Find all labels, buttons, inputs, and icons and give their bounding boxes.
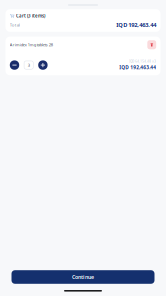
button[interactable]: Remove item bbox=[147, 40, 156, 49]
staticText: 3 bbox=[28, 62, 30, 68]
button[interactable]: Continue bbox=[11, 270, 154, 284]
staticText: IQD 192,463.44 bbox=[119, 64, 156, 70]
button[interactable]: Increase quantity bbox=[38, 60, 48, 70]
staticText: IQD 192,463.44 bbox=[116, 21, 156, 29]
staticText: Total bbox=[10, 22, 20, 28]
button[interactable]: Decrease quantity bbox=[10, 60, 19, 70]
staticText: Cart (3 items) bbox=[16, 13, 45, 19]
staticText: Arimidex 1mg tablets 28 bbox=[10, 42, 53, 47]
staticText: IQD 64,154.48 x 3 bbox=[129, 60, 156, 63]
staticText: Continue bbox=[72, 273, 94, 281]
